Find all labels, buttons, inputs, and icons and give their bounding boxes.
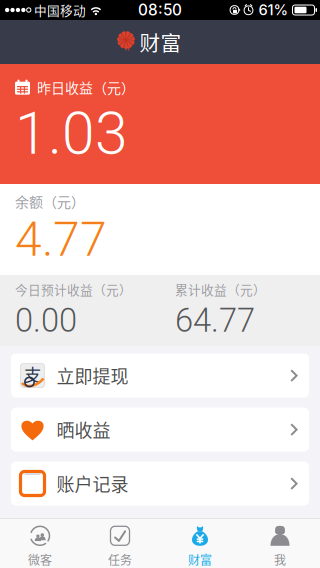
staticText: 昨日收益（元） (37, 77, 135, 97)
staticText: 财富 (188, 551, 212, 568)
button[interactable]: 账户记录 (11, 461, 309, 505)
button[interactable]: 晒收益 (11, 407, 309, 451)
staticText: 账户记录 (56, 470, 128, 497)
staticText: 财富 (139, 27, 181, 57)
staticText: 4.77 (15, 211, 107, 267)
staticText: 微客 (28, 551, 52, 568)
staticText: 64.77 (175, 301, 255, 340)
staticText: 我 (274, 551, 286, 568)
staticText: 中国移动 (34, 1, 86, 19)
staticText: 累计收益（元） (175, 280, 266, 298)
staticText: 1.03 (15, 99, 128, 168)
staticText: 今日预计收益（元） (15, 280, 132, 298)
staticText: 0.00 (15, 301, 77, 340)
staticText: 08:50 (138, 1, 182, 19)
staticText: 任务 (108, 551, 132, 568)
staticText: 晒收益 (56, 416, 110, 443)
staticText: 立即提现 (56, 362, 128, 389)
staticText: 61% (258, 1, 288, 19)
button[interactable]: 财富 (160, 518, 240, 568)
staticText: 余额（元） (15, 191, 85, 211)
button[interactable]: 我 (240, 518, 320, 568)
button[interactable]: 支 (11, 353, 309, 397)
staticText: 支 (24, 361, 41, 387)
button[interactable]: 微客 (0, 518, 80, 568)
button[interactable]: 任务 (80, 518, 160, 568)
